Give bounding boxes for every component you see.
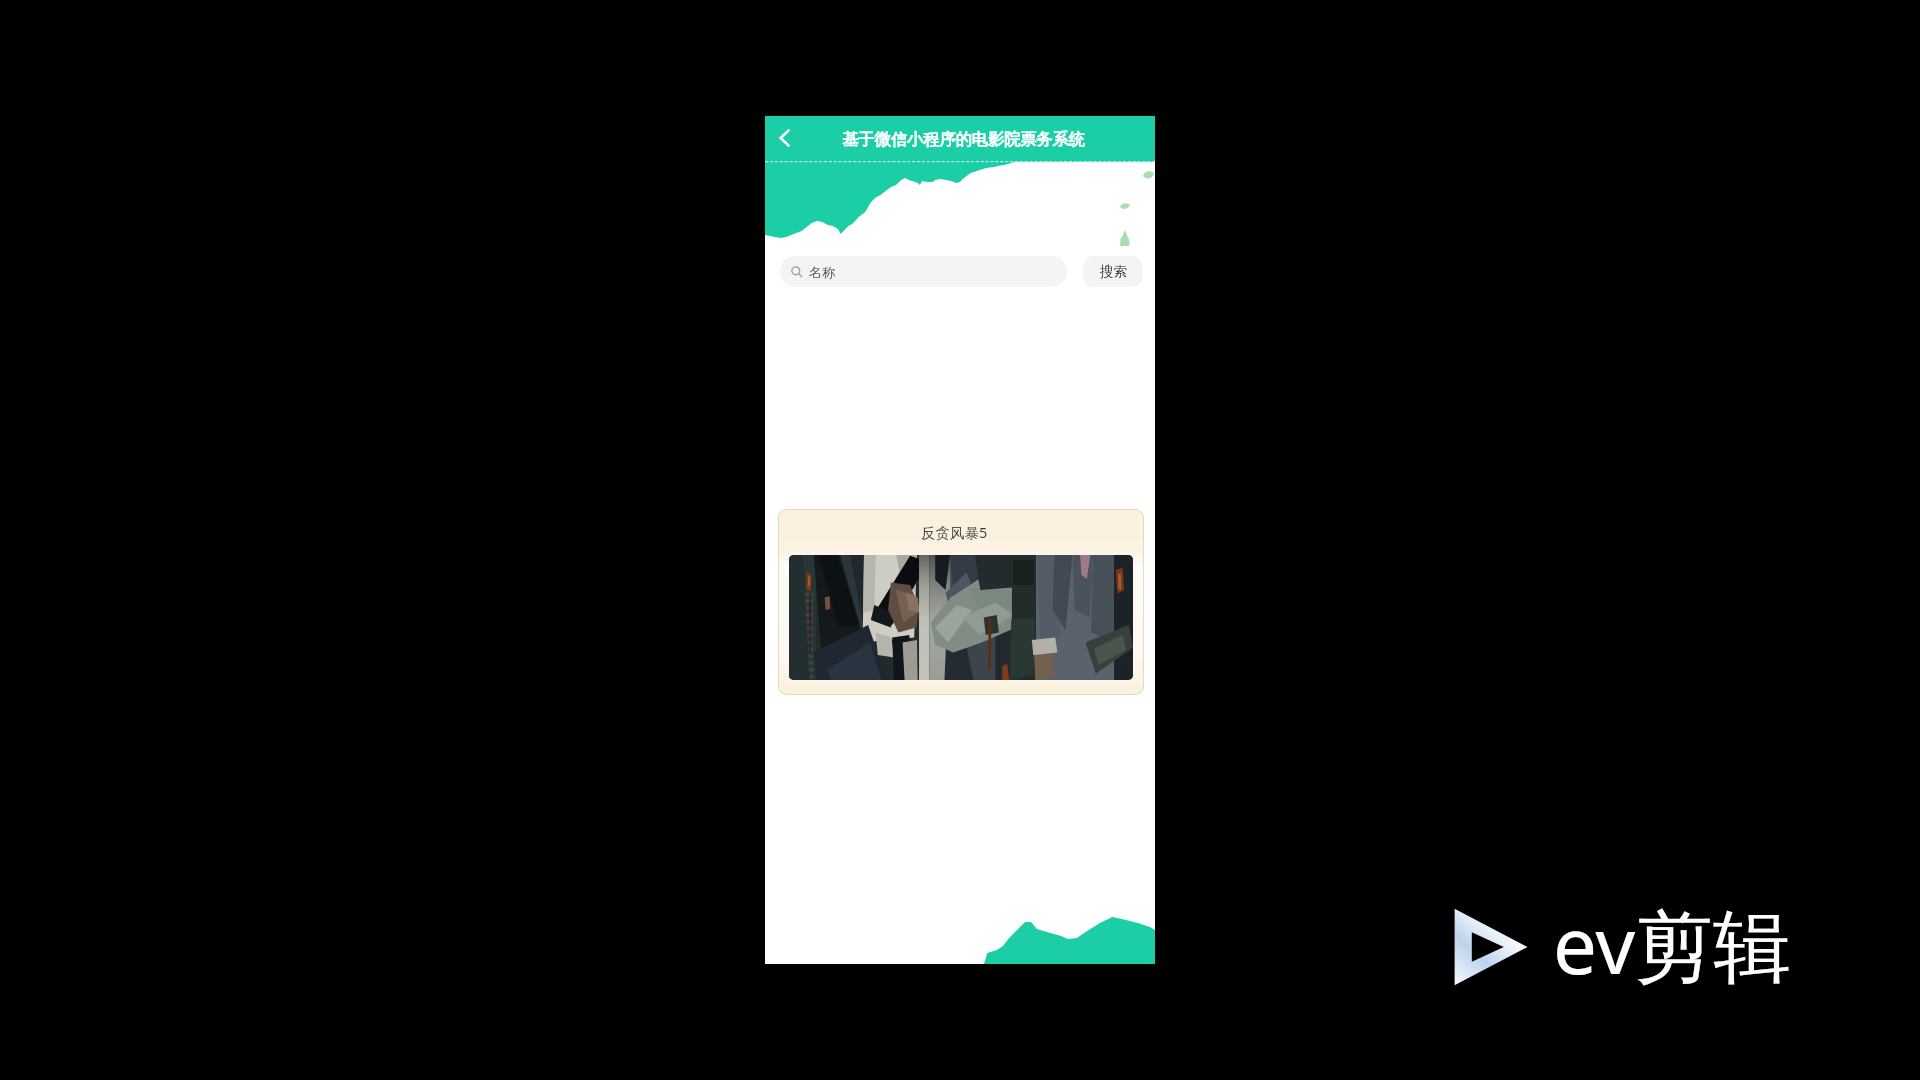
staticText: 搜索 xyxy=(1100,263,1127,280)
button[interactable]: Back xyxy=(769,122,801,154)
button[interactable]: 名称 xyxy=(780,256,1067,287)
staticText: ev剪辑 xyxy=(1553,891,1792,998)
staticText: 基于微信小程序的电影院票务系统 xyxy=(842,129,1085,149)
button[interactable]: 反贪风暴5 xyxy=(778,509,1144,695)
staticText: 反贪风暴5 xyxy=(921,522,988,542)
button[interactable]: 搜索 xyxy=(1083,256,1143,287)
staticText: 名称 xyxy=(809,264,835,280)
